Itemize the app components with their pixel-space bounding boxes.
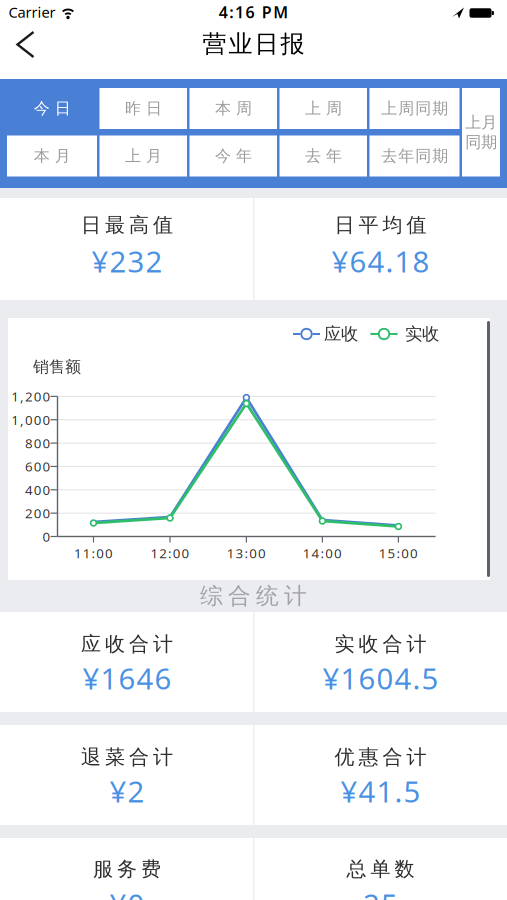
staticText: 今 日 [33, 99, 70, 118]
staticText: 0 [42, 528, 50, 545]
staticText: 600 [25, 458, 50, 475]
staticText: 1,200 [11, 387, 50, 405]
staticText: 退 菜 合 计 [81, 745, 173, 769]
staticText: 应 收 合 计 [81, 632, 173, 656]
staticText: 200 [25, 504, 50, 522]
staticText: 上月 同期 [465, 113, 497, 152]
staticText: 今 年 [215, 146, 252, 166]
staticText: Carrier [8, 2, 55, 22]
staticText: ¥41.5 [340, 771, 420, 810]
staticText: ¥232 [91, 241, 162, 280]
staticText: 总 单 数 [346, 857, 414, 881]
button[interactable]: 去 年 [279, 135, 367, 176]
staticText: 11:00 [74, 544, 113, 562]
staticText: 上 周 [305, 99, 342, 118]
button[interactable]: 上 月 [99, 135, 187, 176]
staticText: 400 [25, 481, 50, 499]
staticText: 25 [363, 884, 398, 900]
staticText: 12:00 [150, 544, 190, 562]
button[interactable]: 上 周 同 期 [369, 88, 459, 129]
staticText: 上 月 [125, 146, 162, 166]
staticText: 上 周 同 期 [381, 99, 448, 118]
staticText: ¥2 [109, 771, 144, 810]
staticText: ¥1646 [82, 658, 171, 697]
staticText: 本 周 [215, 99, 252, 118]
staticText: 15:00 [379, 544, 418, 562]
staticText: 去 年 同 期 [381, 146, 448, 166]
staticText: ¥0 [109, 884, 144, 900]
button[interactable]: 本 月 [7, 135, 97, 176]
staticText: 800 [25, 434, 50, 452]
staticText: 营 业 日 报 [202, 29, 304, 59]
button[interactable]: 去 年 同 期 [369, 135, 459, 176]
staticText: ¥1604.5 [322, 658, 438, 697]
staticText: 优 惠 合 计 [334, 745, 426, 769]
button[interactable]: 今 年 [189, 135, 277, 176]
staticText: 实收 [405, 323, 439, 345]
button[interactable]: 上 周 [279, 88, 367, 129]
staticText: 13:00 [227, 544, 266, 562]
button[interactable]: 本 周 [189, 88, 277, 129]
button[interactable]: Back [6, 29, 50, 69]
staticText: 去 年 [305, 146, 342, 166]
staticText: 1,000 [11, 411, 50, 429]
staticText: ¥64.18 [331, 241, 429, 280]
staticText: 应收 [324, 323, 358, 345]
staticText: 昨 日 [125, 99, 162, 118]
staticText: 综 合 统 计 [200, 582, 307, 610]
staticText: 日 最 高 值 [81, 213, 173, 237]
button[interactable]: 今 日 [7, 88, 97, 129]
button[interactable]: 上月 同期 [462, 88, 500, 176]
staticText: 实 收 合 计 [334, 632, 426, 656]
staticText: 销售额 [33, 357, 81, 377]
staticText: 4:16 PM [219, 1, 288, 23]
staticText: 服 务 费 [93, 857, 161, 881]
staticText: 14:00 [303, 544, 342, 562]
staticText: 本 月 [33, 146, 70, 166]
staticText: 日 平 均 值 [334, 213, 426, 237]
button[interactable]: 昨 日 [99, 88, 187, 129]
